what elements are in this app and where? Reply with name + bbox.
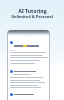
staticText: AI Tutoring: [18, 8, 47, 15]
staticText: Unlimited & Personal: [11, 14, 53, 19]
